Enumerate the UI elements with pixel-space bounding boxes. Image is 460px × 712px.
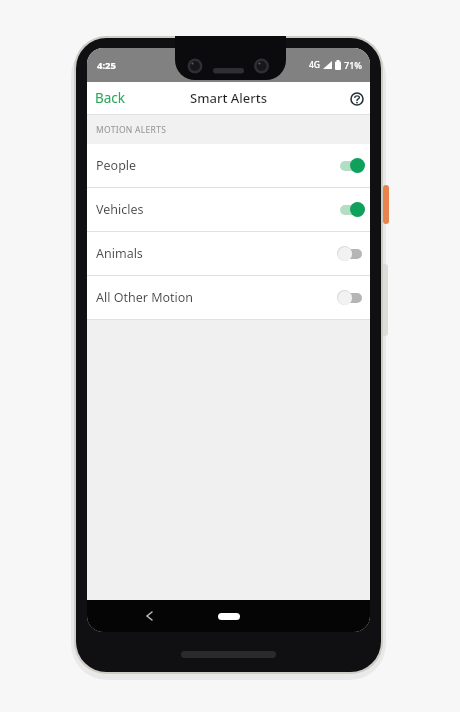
button[interactable]: All Other Motion <box>87 276 370 319</box>
staticText: MOTION ALERTS <box>96 124 167 136</box>
staticText: All Other Motion <box>96 289 194 306</box>
staticText: People <box>96 157 137 174</box>
staticText: 71% <box>344 59 362 71</box>
button[interactable] <box>142 609 156 623</box>
staticText: Animals <box>96 245 143 262</box>
button[interactable]: Animals <box>87 232 370 275</box>
button[interactable] <box>350 90 370 106</box>
button[interactable]: Vehicles <box>87 188 370 231</box>
button[interactable]: People <box>87 144 370 187</box>
staticText: 4G <box>309 59 321 71</box>
button[interactable]: Back <box>87 89 126 107</box>
staticText: Back <box>95 89 126 107</box>
staticText: Smart Alerts <box>190 89 268 107</box>
staticText: Vehicles <box>96 201 144 218</box>
button[interactable] <box>218 613 240 620</box>
staticText: 4:25 <box>97 59 116 72</box>
